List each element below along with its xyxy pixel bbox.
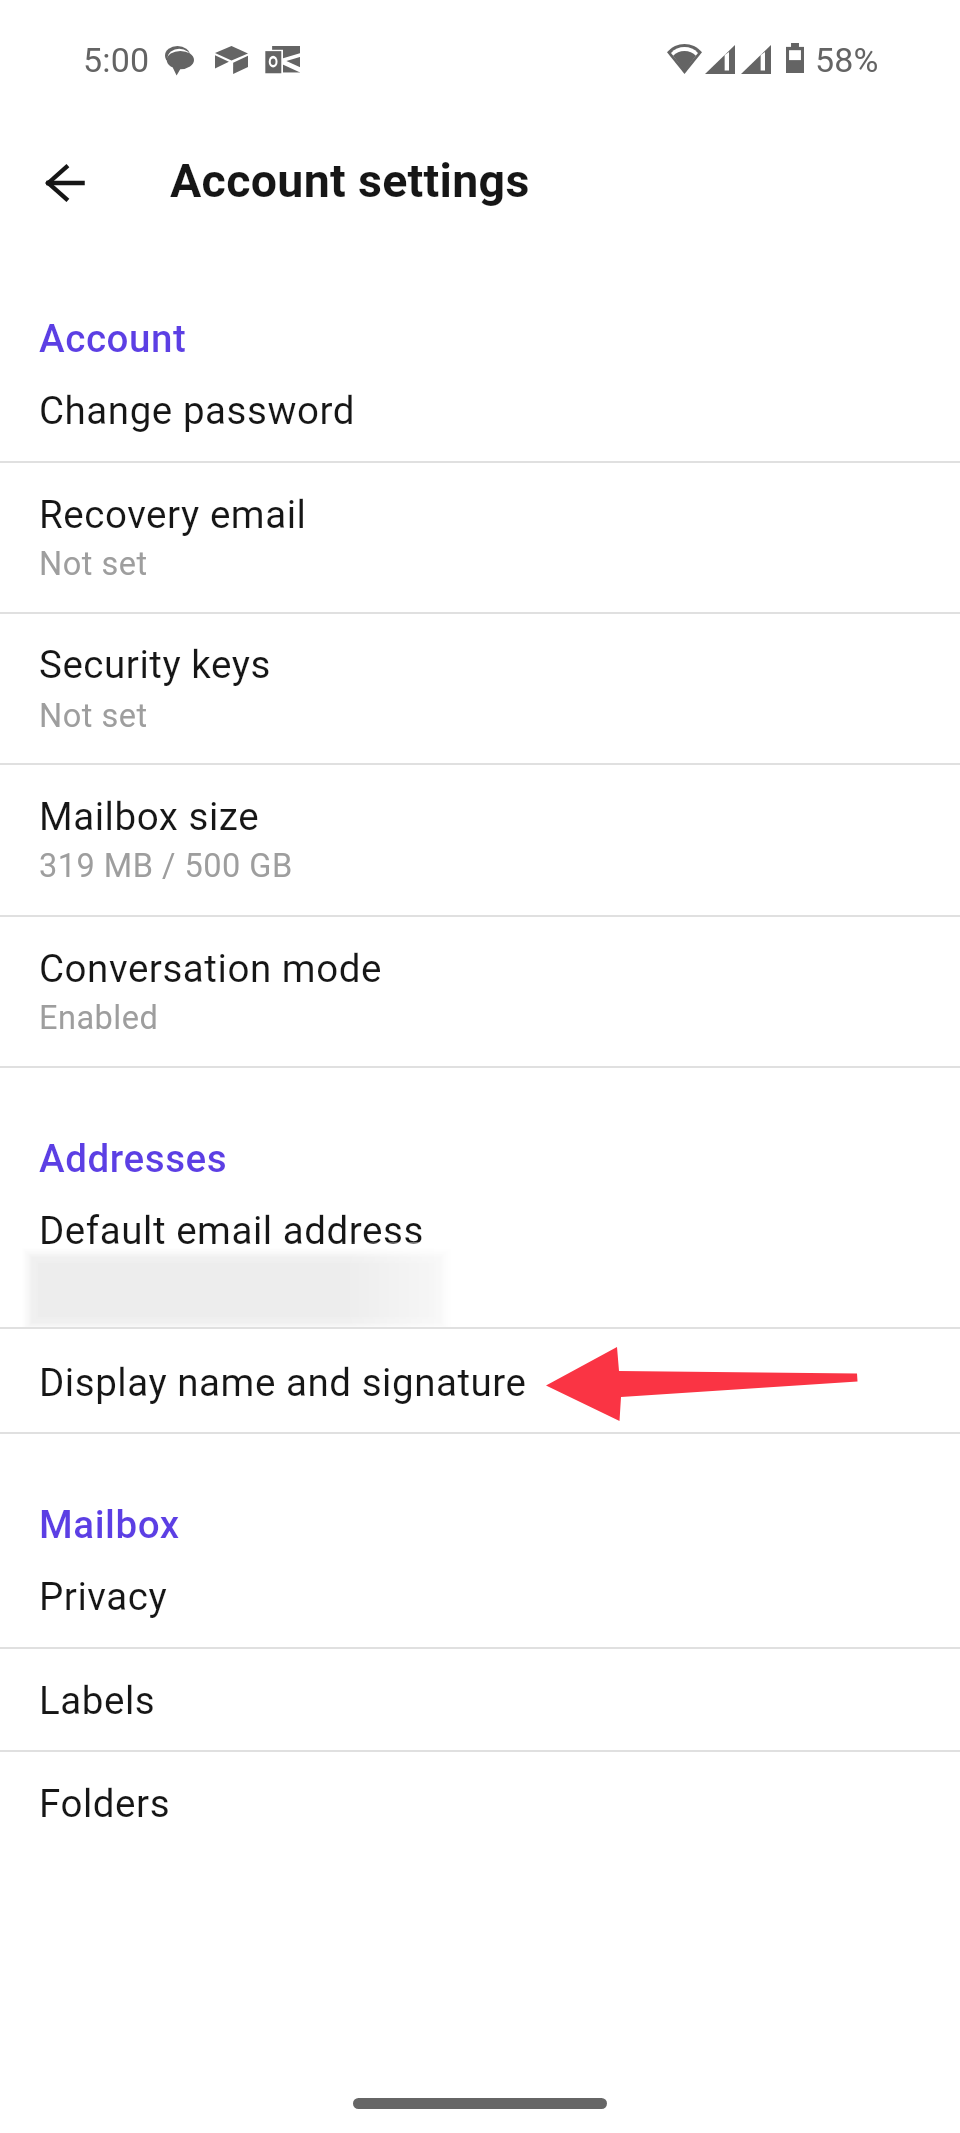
staticText: Conversation mode [39,946,382,991]
staticText: Display name and signature [39,1360,527,1405]
button[interactable]: Change password [0,356,960,461]
staticText: Not set [39,545,148,583]
staticText: Default email address [39,1208,424,1253]
button[interactable]: Folders [0,1750,960,1853]
button[interactable]: Mailbox size [0,763,960,915]
staticText: Account [39,316,187,361]
button[interactable]: Back [25,143,105,223]
staticText: Labels [39,1678,156,1723]
staticText: Security keys [39,642,271,687]
staticText: Addresses [39,1136,228,1181]
staticText: Privacy [39,1574,168,1619]
button[interactable]: Conversation mode [0,915,960,1066]
staticText: Account settings [170,154,530,208]
staticText: 5:00 [83,40,150,80]
button[interactable]: Security keys [0,612,960,763]
staticText: Change password [39,388,355,433]
staticText: 319 MB / 500 GB [39,847,293,885]
staticText: 58% [815,40,879,80]
button[interactable]: Privacy [0,1542,960,1647]
button[interactable]: Labels [0,1647,960,1750]
staticText: Enabled [39,999,159,1037]
button[interactable]: Default email address [0,1180,960,1327]
staticText: Recovery email [39,492,307,537]
staticText: Not set [39,697,148,735]
staticText: Mailbox [39,1502,180,1547]
button[interactable]: Recovery email [0,461,960,612]
staticText: Folders [39,1781,171,1826]
button[interactable]: Display name and signature [0,1327,960,1432]
staticText: Mailbox size [39,794,260,839]
